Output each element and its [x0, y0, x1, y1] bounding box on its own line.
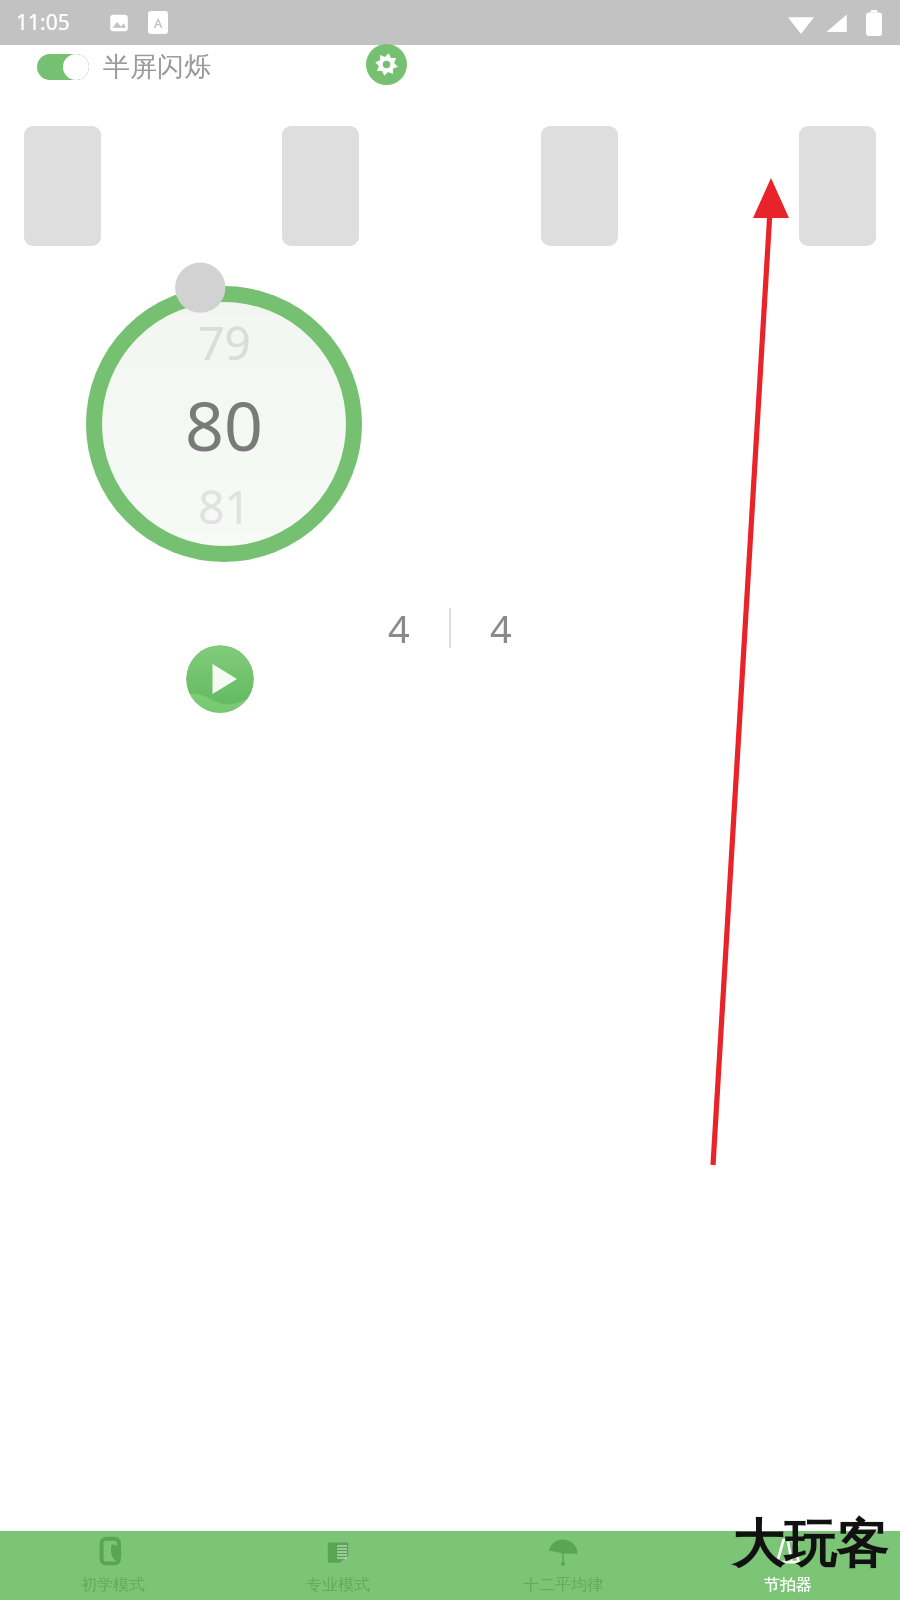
button[interactable]: 十二平均律 — [450, 1531, 675, 1600]
staticText: 4 — [490, 602, 512, 654]
button[interactable]: 初学模式 — [0, 1531, 225, 1600]
button[interactable]: 专业模式 — [225, 1531, 450, 1600]
staticText: 十二平均律 — [523, 1575, 603, 1595]
staticText: 半屏闪烁 — [103, 50, 211, 84]
staticText: 79 — [198, 311, 251, 374]
button[interactable]: 节拍器 — [675, 1531, 900, 1600]
staticText: A — [154, 14, 163, 32]
staticText: 初学模式 — [81, 1575, 145, 1595]
button[interactable]: 4 — [451, 602, 551, 654]
staticText: 4 — [388, 602, 410, 654]
button[interactable]: Play — [186, 645, 254, 713]
staticText: 专业模式 — [306, 1575, 370, 1595]
staticText: 80 — [185, 378, 263, 471]
staticText: 大玩客 — [732, 1512, 888, 1578]
button[interactable]: 半屏闪烁 — [37, 50, 211, 84]
staticText: 11:05 — [16, 8, 70, 37]
button[interactable]: Settings — [366, 44, 407, 85]
button[interactable]: 4 — [349, 602, 449, 654]
staticText: 81 — [198, 475, 251, 538]
staticText: 节拍器 — [764, 1575, 812, 1595]
button[interactable]: 79 — [86, 286, 362, 562]
